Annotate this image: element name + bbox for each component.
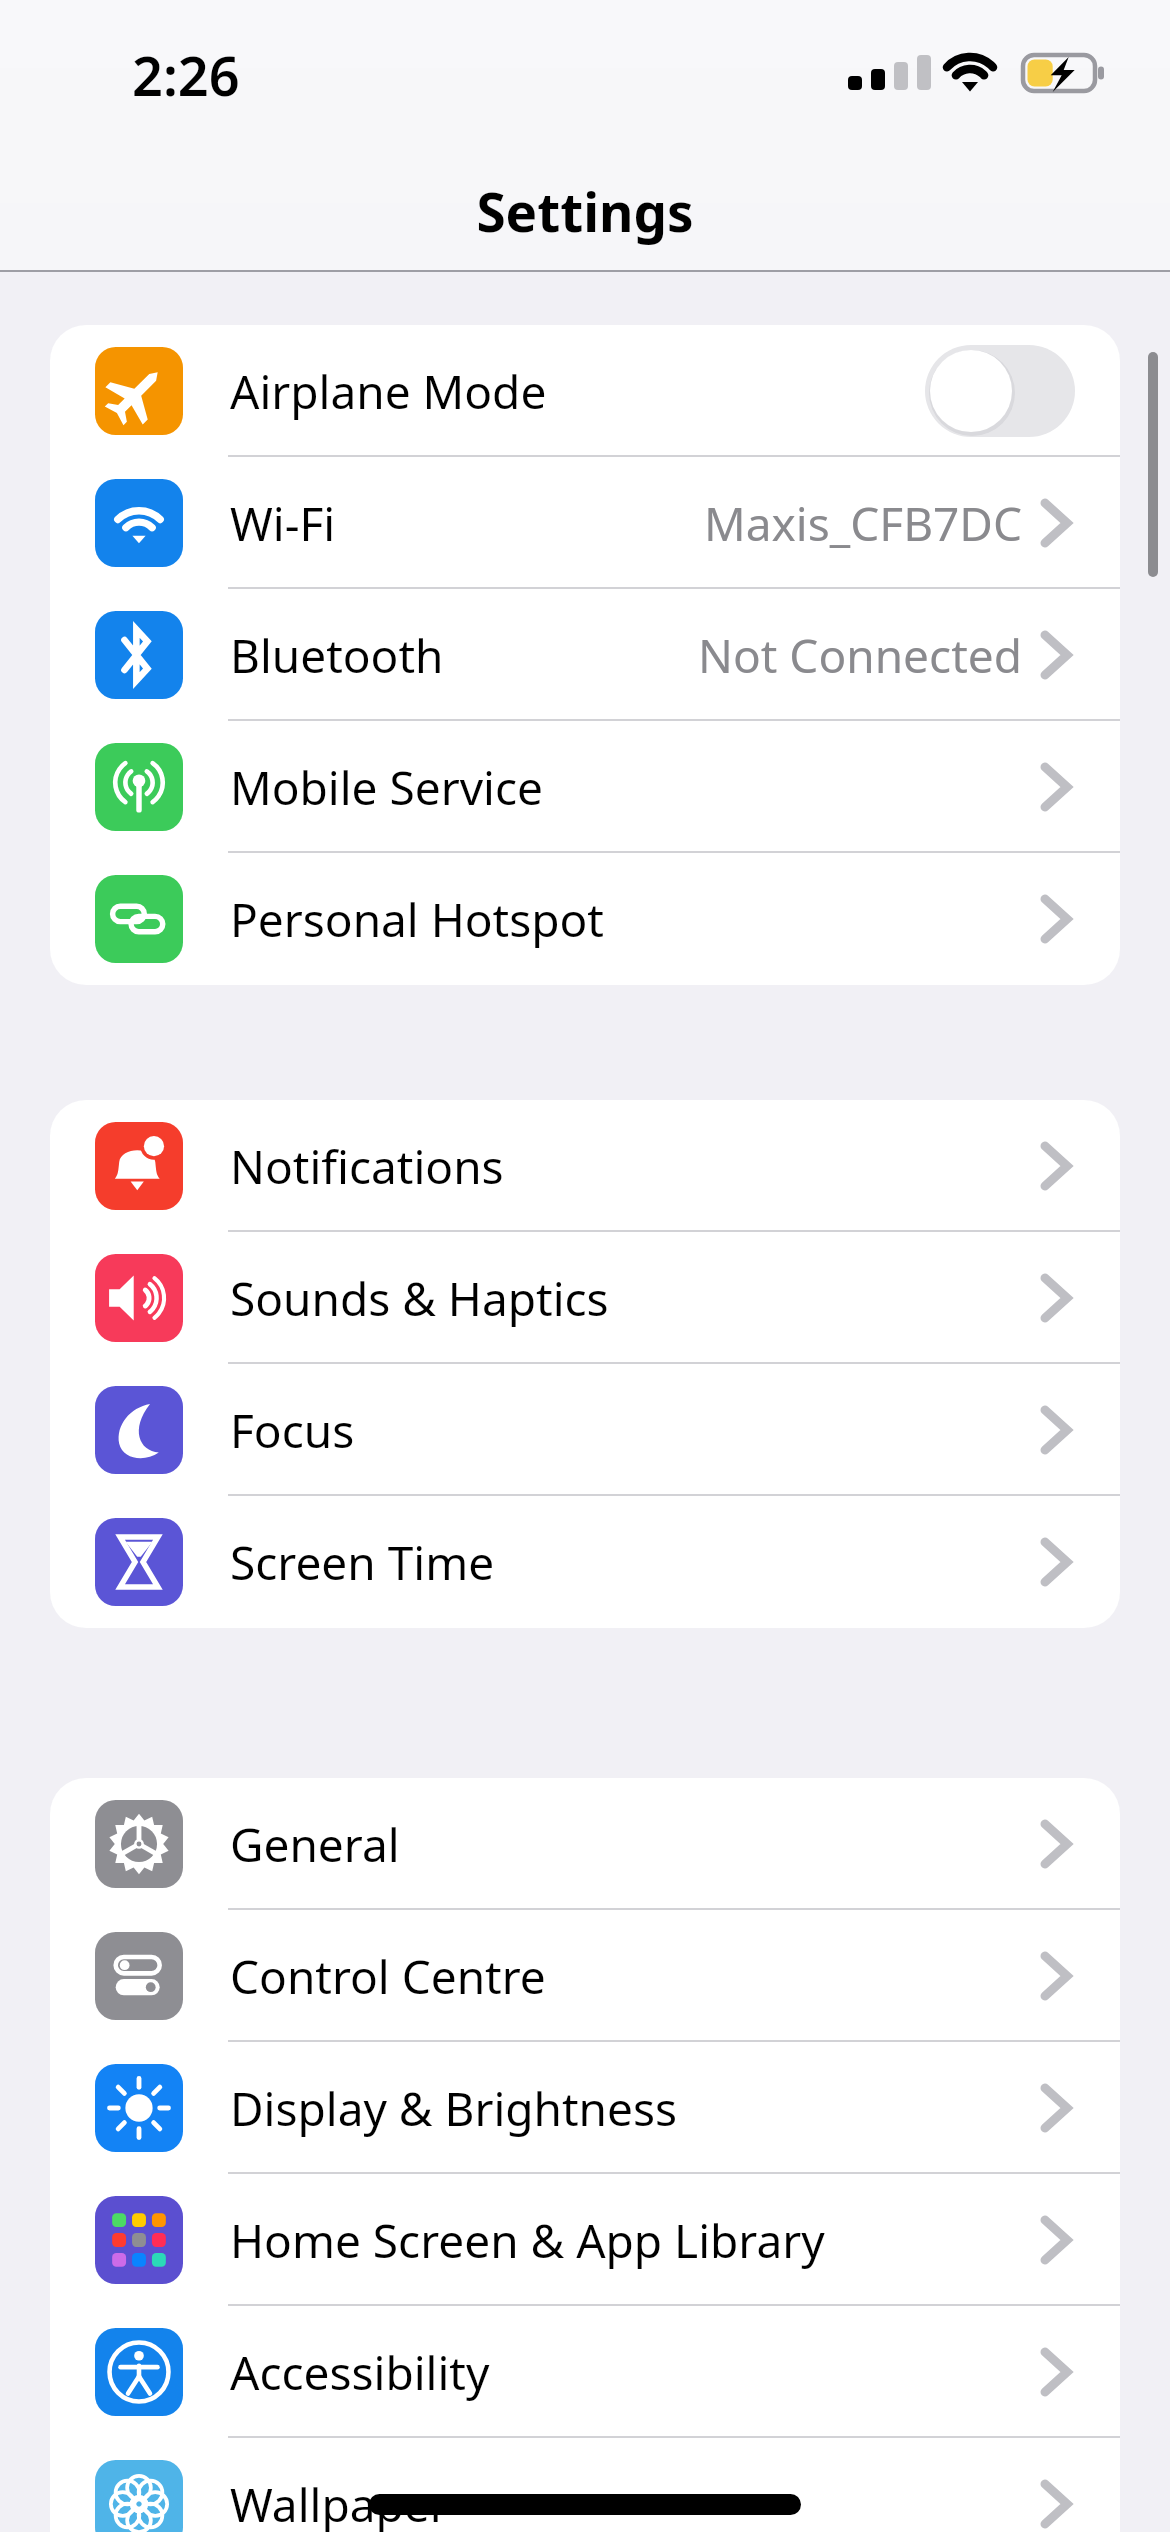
button[interactable]: Screen Time (50, 1496, 1120, 1628)
button[interactable]: Wallpaper (50, 2438, 1120, 2532)
button[interactable]: Bluetooth (50, 589, 1120, 721)
staticText: Notifications (230, 1135, 504, 1198)
button[interactable]: Focus (50, 1364, 1120, 1496)
staticText: Airplane Mode (230, 360, 547, 423)
staticText: Maxis_CFB7DC (704, 492, 1022, 555)
staticText: Screen Time (230, 1531, 495, 1594)
button[interactable]: Mobile Service (50, 721, 1120, 853)
button[interactable]: Airplane Mode toggle (925, 345, 1075, 437)
button[interactable]: Accessibility (50, 2306, 1120, 2438)
staticText: Settings (0, 175, 1170, 247)
staticText: Personal Hotspot (230, 888, 604, 951)
staticText: 2:26 (132, 38, 240, 112)
staticText: Sounds & Haptics (230, 1267, 609, 1330)
staticText: Mobile Service (230, 756, 543, 819)
staticText: Wi-Fi (230, 492, 336, 555)
button[interactable]: Display & Brightness (50, 2042, 1120, 2174)
button[interactable]: General (50, 1778, 1120, 1910)
staticText: Control Centre (230, 1945, 546, 2008)
button[interactable]: Personal Hotspot (50, 853, 1120, 985)
button[interactable]: Notifications (50, 1100, 1120, 1232)
staticText: Display & Brightness (230, 2077, 678, 2140)
button[interactable]: Wi-Fi (50, 457, 1120, 589)
staticText: Home Screen & App Library (230, 2209, 825, 2272)
button[interactable]: Control Centre (50, 1910, 1120, 2042)
staticText: Accessibility (230, 2341, 490, 2404)
button[interactable]: Home Screen & App Library (50, 2174, 1120, 2306)
staticText: Focus (230, 1399, 355, 1462)
staticText: Wallpaper (230, 2473, 449, 2532)
staticText: General (230, 1813, 400, 1876)
staticText: Not Connected (698, 624, 1022, 687)
staticText: Bluetooth (230, 624, 444, 687)
button[interactable]: Airplane Mode (50, 325, 1120, 457)
button[interactable]: Sounds & Haptics (50, 1232, 1120, 1364)
